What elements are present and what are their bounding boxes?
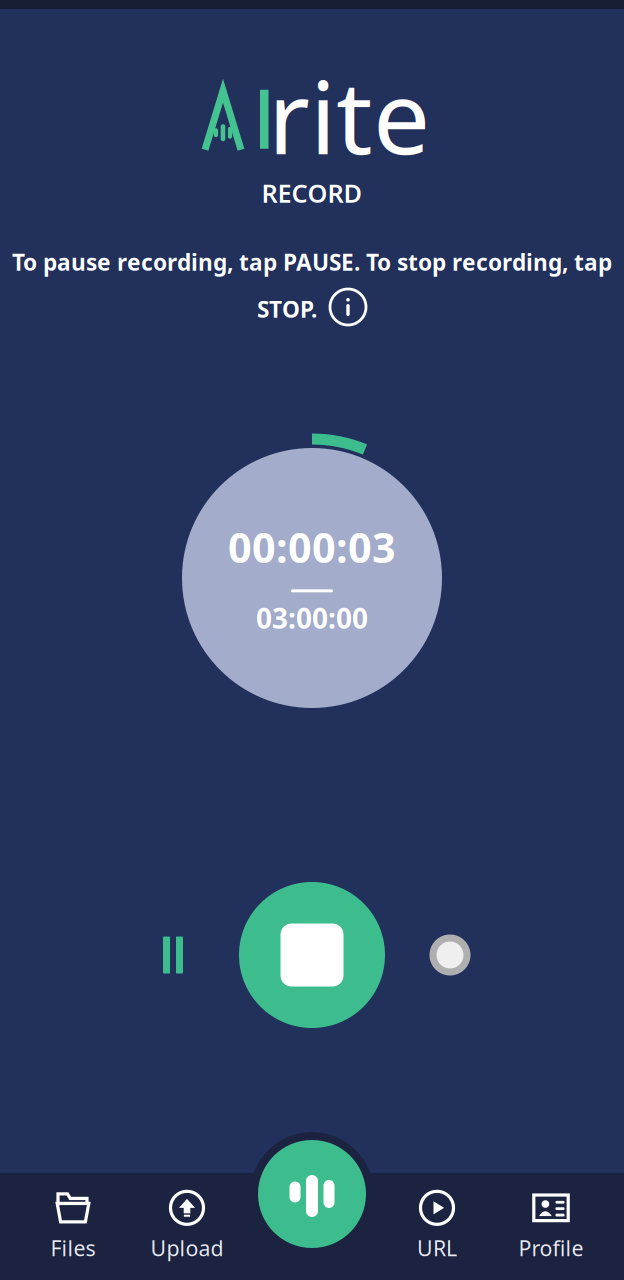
staticText: Upload	[150, 1234, 223, 1262]
staticText: URL	[417, 1234, 457, 1262]
button[interactable]: Info	[329, 288, 367, 326]
button[interactable]: Profile	[478, 1173, 624, 1280]
button[interactable]: Files	[0, 1173, 146, 1280]
button[interactable]: Mute	[406, 911, 494, 999]
staticText: To pause recording, tap PAUSE. To stop r…	[12, 247, 612, 277]
button[interactable]: Record	[250, 1132, 374, 1256]
staticText: RECORD	[261, 176, 362, 210]
staticText: Profile	[518, 1234, 583, 1262]
staticText: Files	[50, 1234, 95, 1262]
button[interactable]: Pause	[129, 911, 217, 999]
staticText: rite	[268, 48, 430, 182]
staticText: STOP.	[257, 294, 317, 324]
button[interactable]: Upload	[146, 1173, 228, 1280]
staticText: 03:00:00	[256, 599, 368, 637]
button[interactable]: URL	[396, 1173, 478, 1280]
staticText: 00:00:03	[228, 519, 396, 574]
button[interactable]: Stop	[239, 882, 385, 1028]
